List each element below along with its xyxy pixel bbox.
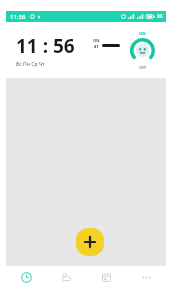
staticText: 11:56 [10, 13, 26, 21]
button[interactable]: 11 : 56 [6, 22, 166, 78]
staticText: 88 [157, 13, 163, 20]
staticText: Вс Пн Ср Чт [16, 61, 45, 68]
button[interactable]: Weather [46, 266, 86, 288]
staticText: ON [139, 31, 146, 36]
button[interactable]: Alarms [6, 266, 46, 288]
staticText: 41 [94, 44, 99, 49]
button[interactable]: Calendar [86, 266, 126, 288]
staticText: OFF [139, 65, 147, 70]
button[interactable]: Alarm enabled [129, 37, 156, 64]
staticText: 11 : 56 [16, 33, 75, 59]
button[interactable]: Toggle alarm [102, 44, 120, 47]
button[interactable]: More [126, 266, 166, 288]
staticText: ON [93, 38, 100, 43]
button[interactable]: Add alarm [76, 228, 104, 256]
